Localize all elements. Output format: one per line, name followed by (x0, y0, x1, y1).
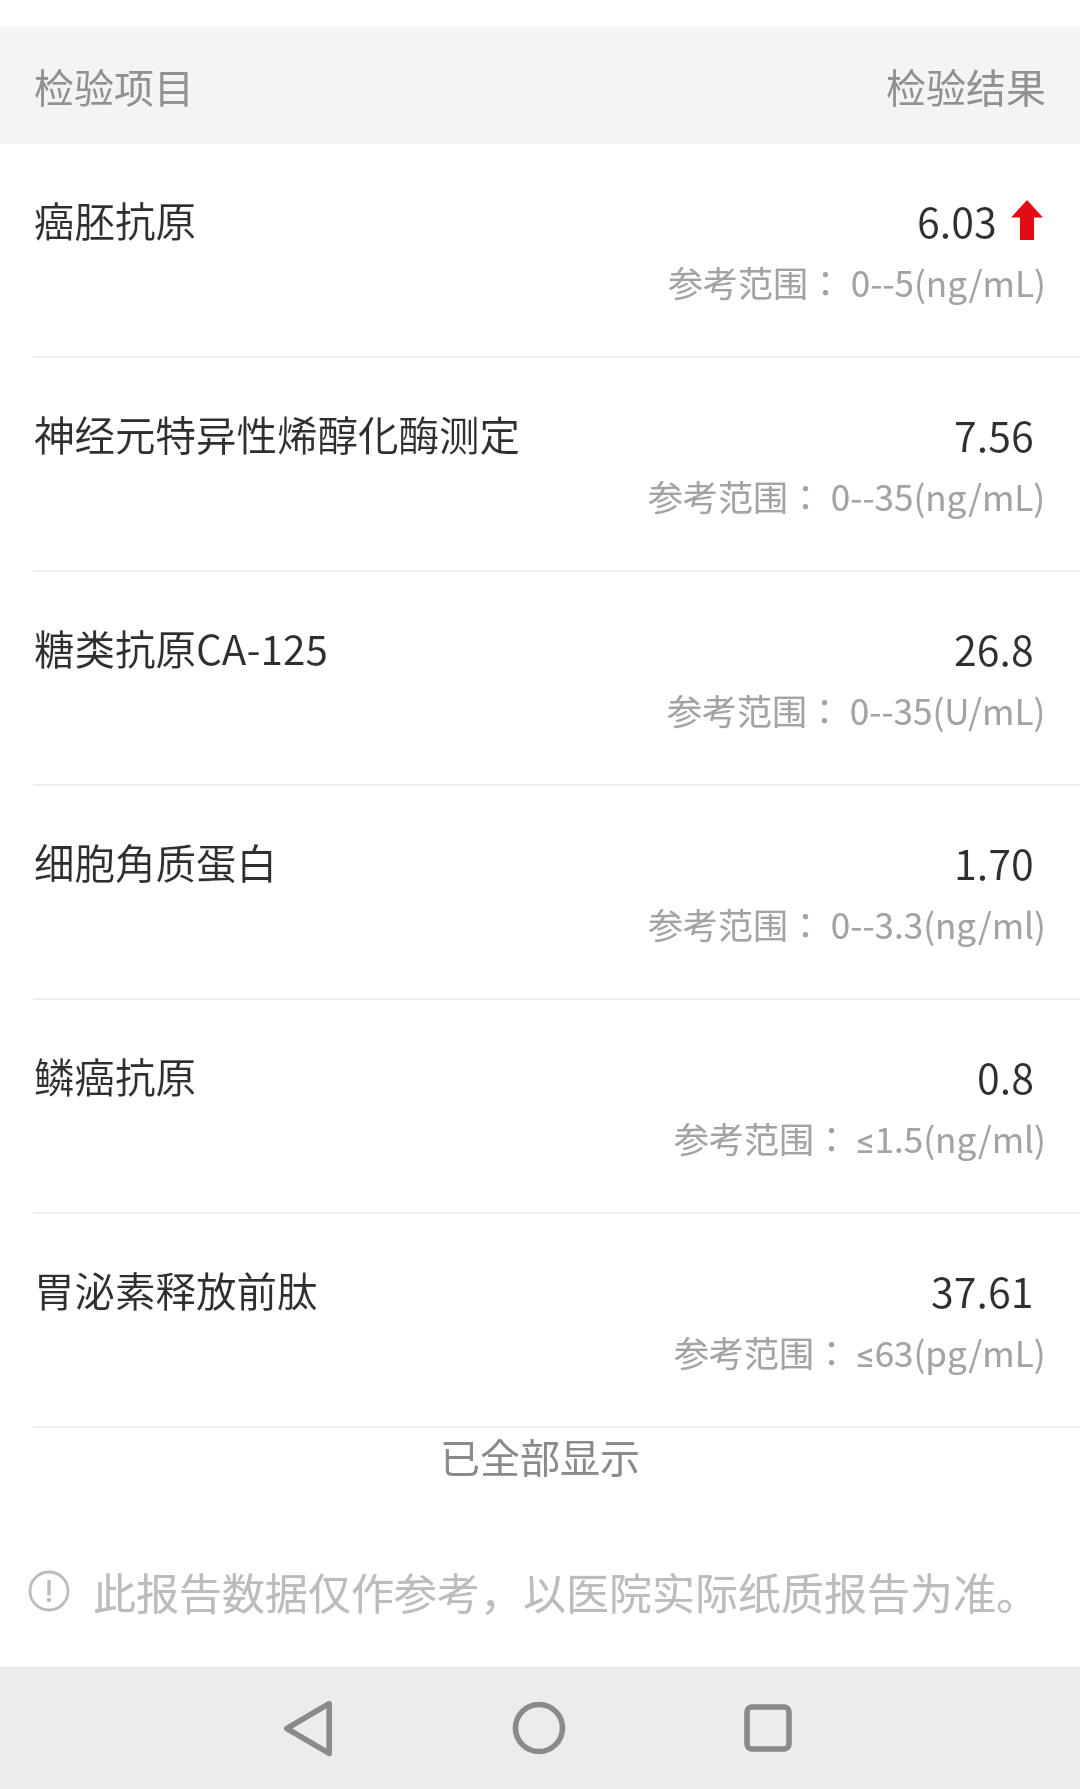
staticText: 26.8 (954, 618, 1034, 677)
staticText: 神经元特异性烯醇化酶测定 (34, 404, 520, 463)
button[interactable]: 癌胚抗原 (0, 144, 1080, 356)
staticText: 胃泌素释放前肽 (34, 1260, 318, 1319)
staticText: 鳞癌抗原 (34, 1046, 196, 1105)
staticText: 已全部显示 (440, 1427, 640, 1485)
staticText: 检验项目 (34, 57, 194, 115)
button[interactable]: 细胞角质蛋白 (0, 786, 1080, 998)
staticText: 癌胚抗原 (34, 190, 196, 249)
staticText: 1.70 (954, 832, 1034, 891)
staticText: 37.61 (931, 1260, 1034, 1319)
staticText: 参考范围： 0--3.3(ng/ml) (648, 898, 1046, 949)
staticText: 参考范围： ≤63(pg/mL) (674, 1326, 1046, 1377)
button[interactable]: Recents (708, 1668, 828, 1788)
staticText: 参考范围： ≤1.5(ng/ml) (674, 1112, 1046, 1163)
staticText: 7.56 (954, 404, 1034, 463)
staticText: 6.03 (917, 190, 997, 249)
staticText: 参考范围： 0--5(ng/mL) (668, 256, 1046, 307)
staticText: 参考范围： 0--35(ng/mL) (648, 470, 1046, 521)
staticText: 参考范围： 0--35(U/mL) (667, 684, 1046, 735)
button[interactable]: 神经元特异性烯醇化酶测定 (0, 358, 1080, 570)
staticText: 糖类抗原CA-125 (34, 618, 328, 677)
staticText: 此报告数据仅作参考，以医院实际纸质报告为准。 (93, 1560, 1039, 1622)
staticText: 细胞角质蛋白 (34, 832, 277, 891)
button[interactable]: 胃泌素释放前肽 (0, 1214, 1080, 1426)
staticText: 检验结果 (886, 57, 1046, 115)
button[interactable]: 鳞癌抗原 (0, 1000, 1080, 1212)
button[interactable]: 糖类抗原CA-125 (0, 572, 1080, 784)
button[interactable]: Back (248, 1668, 368, 1788)
staticText: 0.8 (977, 1046, 1034, 1105)
button[interactable]: Home (479, 1668, 599, 1788)
